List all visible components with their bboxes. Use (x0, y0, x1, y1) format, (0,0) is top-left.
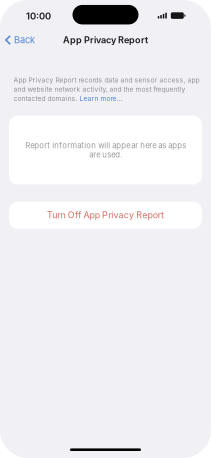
staticText: Turn Off App Privacy Report (47, 210, 164, 220)
button[interactable]: Back (0, 31, 41, 48)
staticText: contacted domains. (13, 94, 79, 103)
staticText: Learn more... (79, 94, 122, 103)
staticText: 10:00 (26, 10, 51, 22)
staticText: Back (14, 34, 35, 45)
staticText: App Privacy Report records data and sens… (13, 76, 199, 84)
staticText: and website network activity, and the mo… (13, 85, 185, 93)
button[interactable]: Learn more... (79, 94, 122, 103)
staticText: Report information will appear here as a… (25, 141, 186, 159)
button[interactable]: Turn Off App Privacy Report (9, 202, 202, 229)
staticText: App Privacy Report (63, 34, 148, 45)
